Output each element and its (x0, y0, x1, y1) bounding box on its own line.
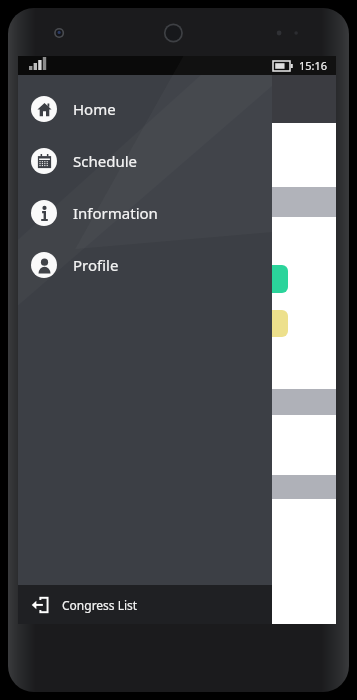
button[interactable]: Profile (18, 239, 272, 291)
staticText: Home (73, 99, 116, 119)
staticText: Information (73, 203, 158, 223)
button[interactable]: Rate it! (168, 310, 288, 337)
button[interactable]: Attend (168, 265, 288, 293)
staticText: Schedule (73, 151, 137, 171)
button[interactable]: Posters (18, 125, 336, 187)
button[interactable]: Home (18, 83, 272, 135)
staticText: Profile (73, 255, 119, 275)
staticText: 15:16 (299, 58, 328, 73)
button[interactable]: Schedule (18, 135, 272, 187)
button[interactable]: Information (18, 187, 272, 239)
button[interactable]: Congress List (18, 585, 272, 624)
staticText: Congress List (62, 597, 138, 613)
